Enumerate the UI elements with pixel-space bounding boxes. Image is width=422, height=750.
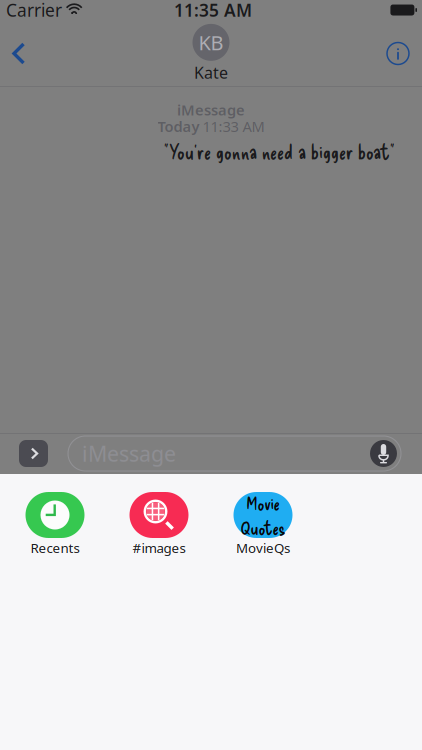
button[interactable]: Back	[0, 33, 40, 73]
staticText: Carrier	[6, 0, 62, 21]
staticText: iMessage	[82, 439, 176, 468]
button[interactable]: Recents	[3, 492, 107, 557]
staticText: 11:33 AM	[202, 116, 264, 136]
button[interactable]: KB	[174, 24, 247, 83]
staticText: #images	[132, 539, 185, 557]
staticText: Recents	[30, 539, 79, 557]
button[interactable]: Movie	[211, 492, 315, 557]
staticText: Today	[157, 116, 199, 136]
button[interactable]: #images	[107, 492, 211, 557]
staticText: iMessage	[177, 100, 245, 119]
staticText: MovieQs	[236, 539, 290, 557]
staticText: Kate	[194, 62, 228, 83]
staticText: 11:35 AM	[174, 0, 252, 21]
staticText: "You're gonna need a bigger boat"	[164, 139, 395, 164]
staticText: Movie	[246, 492, 279, 514]
staticText: Quotes	[240, 516, 285, 538]
button[interactable]: App Store	[0, 440, 68, 467]
button[interactable]: Details	[372, 33, 422, 73]
staticText: KB	[198, 29, 223, 56]
